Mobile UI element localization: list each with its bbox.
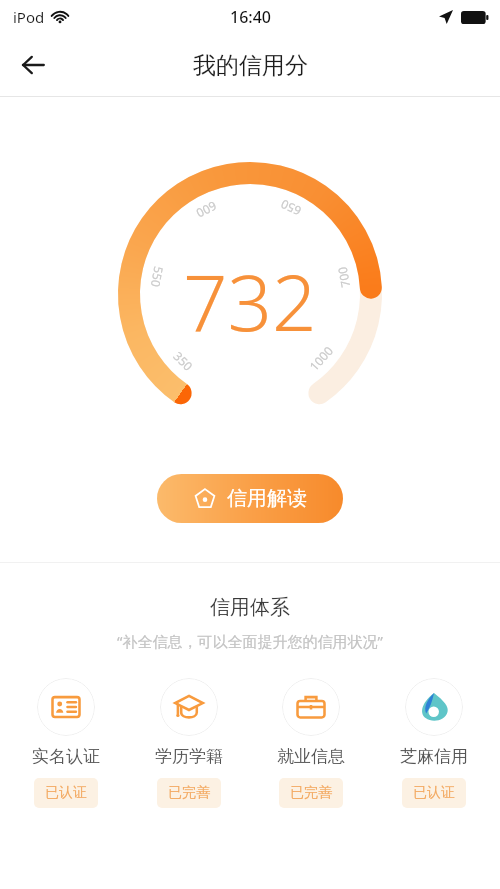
staticText: 学历学籍 — [155, 746, 223, 767]
staticText: 600 — [193, 198, 219, 222]
staticText: 已完善 — [290, 784, 332, 802]
staticText: 我的信用分 — [193, 51, 308, 80]
staticText: 已认证 — [45, 784, 87, 802]
staticText: 700 — [334, 265, 353, 289]
staticText: 350 — [170, 348, 197, 374]
staticText: iPod — [13, 7, 45, 27]
staticText: 已认证 — [413, 784, 455, 802]
staticText: 信用解读 — [227, 486, 307, 511]
button[interactable]: 就业信息 — [255, 678, 367, 808]
staticText: “补全信息，可以全面提升您的信用状况” — [0, 631, 500, 651]
button[interactable]: 学历学籍 — [133, 678, 245, 808]
staticText: 信用体系 — [0, 595, 500, 620]
staticText: 732 — [183, 248, 317, 354]
staticText: 实名认证 — [32, 746, 100, 767]
button[interactable]: 信用解读 — [157, 474, 343, 523]
staticText: 16:40 — [230, 6, 271, 28]
button[interactable]: Back — [9, 41, 57, 89]
staticText: 就业信息 — [277, 746, 345, 767]
staticText: 芝麻信用 — [400, 746, 468, 767]
staticText: 550 — [148, 265, 167, 289]
button[interactable]: 芝麻信用 — [378, 678, 490, 808]
staticText: 1000 — [306, 342, 336, 374]
button[interactable]: 实名认证 — [10, 678, 122, 808]
staticText: 已完善 — [168, 784, 210, 802]
staticText: 650 — [278, 196, 303, 220]
